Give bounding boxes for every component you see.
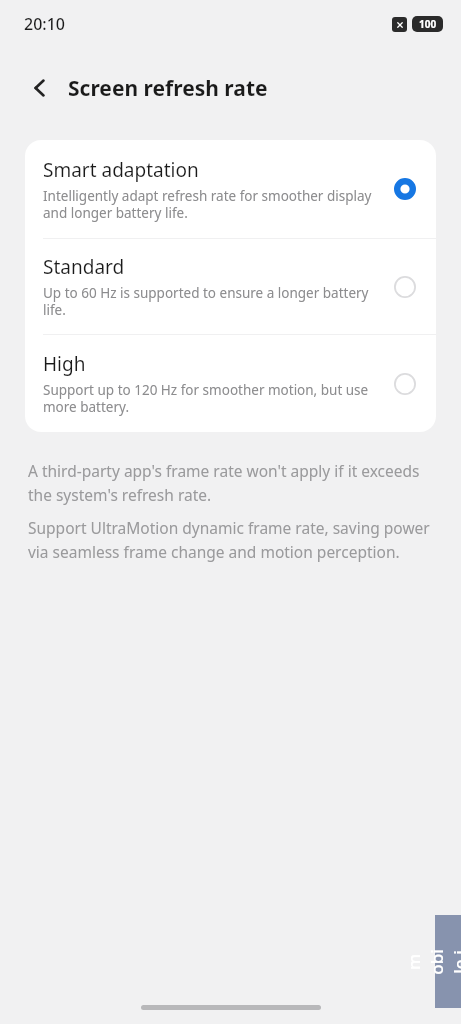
staticText: Standard	[43, 254, 125, 280]
staticText: Support up to 120 Hz for smoother motion…	[43, 381, 378, 416]
staticText: Support UltraMotion dynamic frame rate, …	[28, 517, 431, 562]
staticText: Up to 60 Hz is supported to ensure a lon…	[43, 284, 378, 319]
staticText: Intelligently adapt refresh rate for smo…	[43, 187, 378, 222]
button[interactable]: Smart adaptation	[25, 140, 436, 238]
staticText: Screen refresh rate	[68, 74, 268, 103]
staticText: High	[43, 351, 86, 377]
button[interactable]: Back	[20, 68, 60, 108]
button[interactable]: High	[25, 335, 436, 432]
button[interactable]: Standard	[25, 239, 436, 334]
staticText: mobile.ir	[402, 949, 461, 975]
staticText: 20:10	[24, 13, 65, 35]
staticText: Smart adaptation	[43, 157, 199, 183]
staticText: 100	[419, 17, 437, 31]
staticText: A third-party app's frame rate won't app…	[28, 460, 431, 505]
